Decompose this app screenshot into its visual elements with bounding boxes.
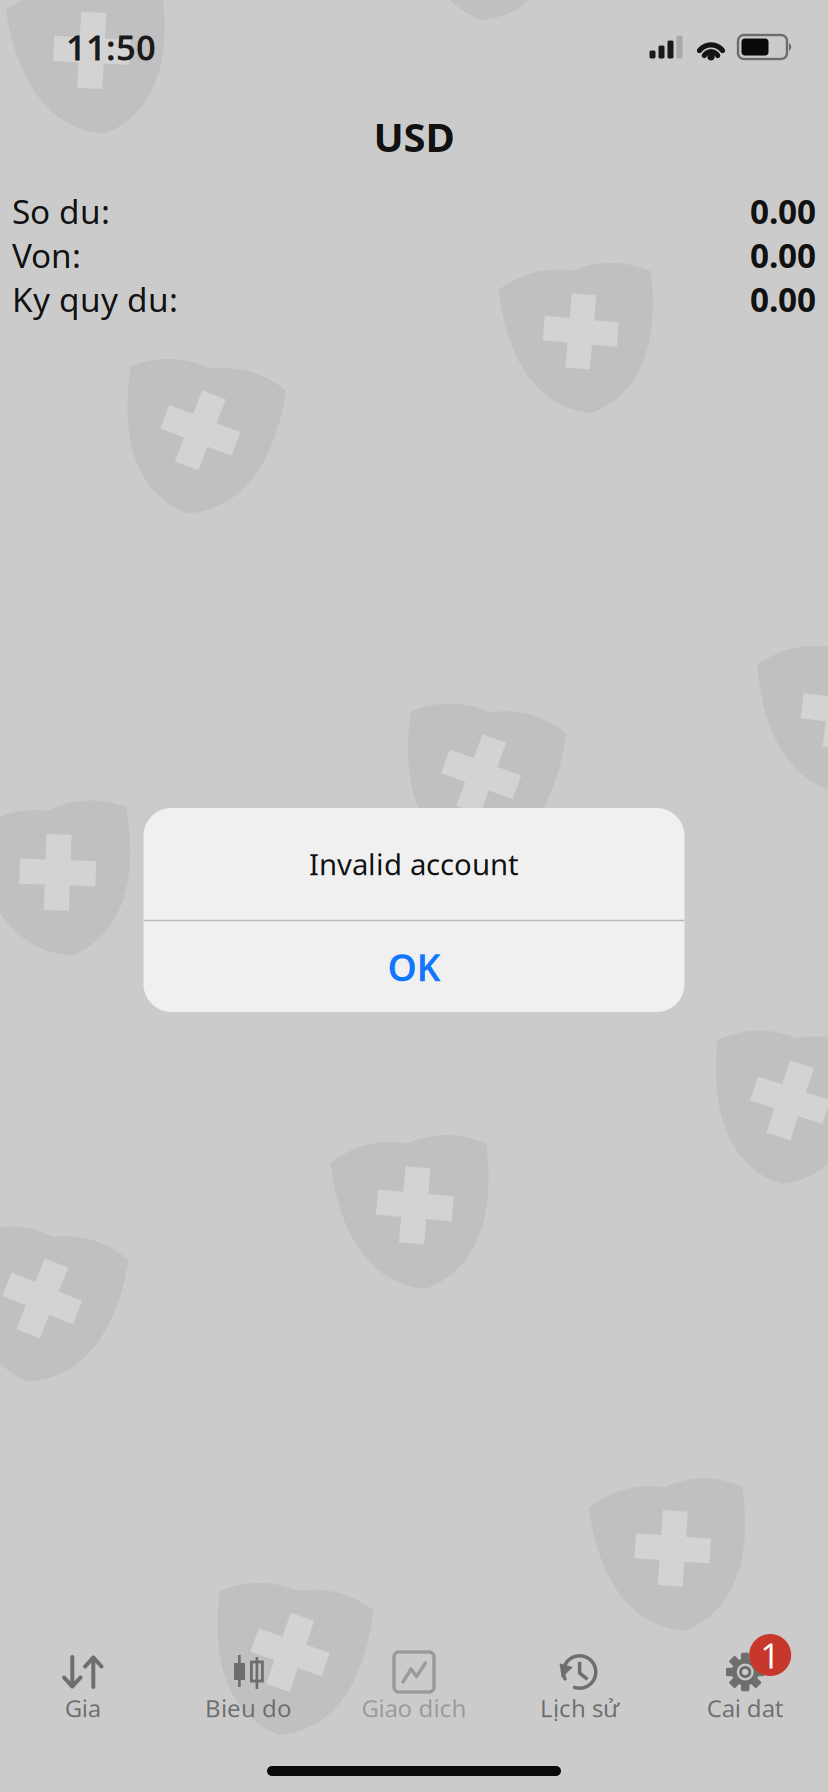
staticText: Bieu do bbox=[205, 1692, 292, 1724]
staticText: 0.00 bbox=[750, 277, 816, 321]
staticText: Invalid account bbox=[309, 844, 519, 883]
staticText: Von: bbox=[12, 233, 81, 277]
staticText: 11:50 bbox=[66, 24, 156, 70]
staticText: Gia bbox=[65, 1692, 101, 1724]
button[interactable]: Lịch sử bbox=[497, 1651, 662, 1723]
staticText: 0.00 bbox=[750, 233, 816, 277]
staticText: Lịch sử bbox=[540, 1692, 619, 1724]
staticText: OK bbox=[387, 942, 440, 992]
button[interactable]: Bieu do bbox=[166, 1651, 331, 1723]
button[interactable]: 1 bbox=[662, 1651, 828, 1723]
staticText: 1 bbox=[760, 1632, 780, 1678]
button[interactable]: Giao dich bbox=[331, 1651, 497, 1723]
staticText: USD bbox=[373, 110, 454, 163]
button[interactable]: OK bbox=[143, 921, 684, 1012]
button[interactable]: Gia bbox=[0, 1651, 166, 1723]
staticText: 0.00 bbox=[750, 189, 816, 233]
staticText: So du: bbox=[12, 189, 110, 233]
staticText: Cai dat bbox=[707, 1692, 784, 1724]
staticText: Giao dich bbox=[361, 1692, 466, 1724]
staticText: Ky quy du: bbox=[12, 277, 178, 321]
